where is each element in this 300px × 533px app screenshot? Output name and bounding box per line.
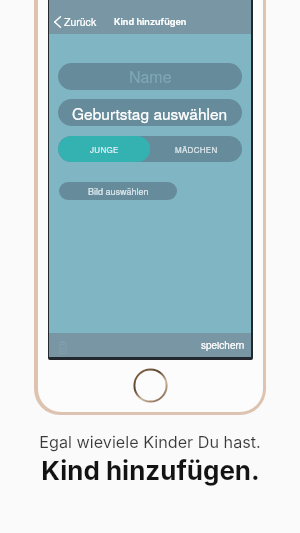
button[interactable]: Löschen (59, 341, 67, 354)
button[interactable]: Bild auswählen (59, 182, 177, 200)
staticText: Kind hinzufügen (114, 16, 187, 27)
button[interactable]: Zurück (49, 8, 105, 35)
button[interactable]: Geburtstag auswählen (58, 99, 242, 126)
staticText: MÄDCHEN (175, 144, 218, 155)
staticText: Bild auswählen (88, 185, 149, 198)
staticText: speichern (201, 338, 245, 352)
staticText: Egal wieviele Kinder Du hast. (39, 432, 261, 452)
staticText: Geburtstag auswählen (72, 102, 228, 124)
button[interactable]: speichern (201, 333, 251, 357)
button[interactable]: MÄDCHEN (150, 136, 242, 162)
staticText: Name (129, 65, 172, 88)
button[interactable]: JUNGE (58, 136, 150, 162)
staticText: JUNGE (90, 144, 119, 155)
button[interactable]: Home (133, 368, 168, 403)
staticText: Kind hinzufügen. (41, 455, 260, 486)
staticText: Zurück (64, 14, 97, 29)
button[interactable]: Name (58, 63, 242, 90)
